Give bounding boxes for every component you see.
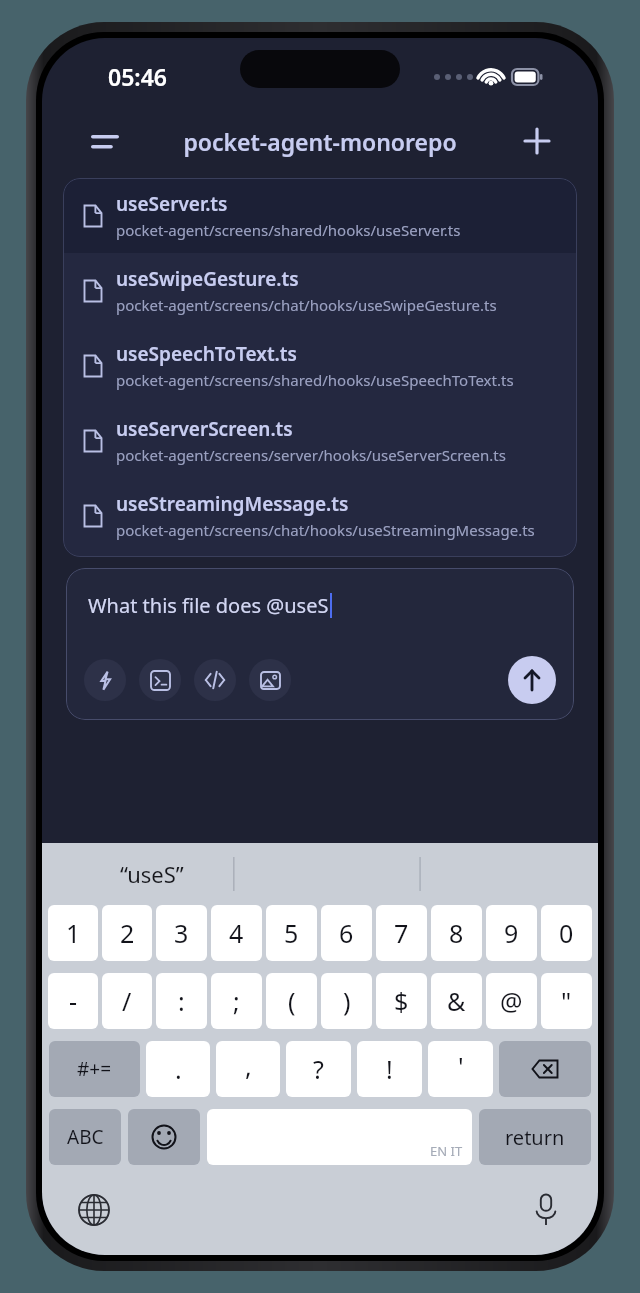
staticText: ABC xyxy=(67,1124,104,1150)
button[interactable]: Code xyxy=(194,659,236,701)
staticText: - xyxy=(69,984,78,1018)
button[interactable]: #+= xyxy=(49,1041,140,1097)
staticText: . xyxy=(175,1052,182,1086)
staticText: pocket-agent-monorepo xyxy=(183,126,457,157)
staticText: 9 xyxy=(504,916,519,950)
staticText: What this file does @useS xyxy=(88,592,329,619)
button[interactable]: : xyxy=(156,973,207,1029)
button[interactable]: 7 xyxy=(376,905,427,961)
button[interactable]: ? xyxy=(286,1041,351,1097)
staticText: useSwipeGesture.ts xyxy=(116,266,299,292)
button[interactable]: @ xyxy=(486,973,537,1029)
button[interactable]: $ xyxy=(376,973,427,1029)
button[interactable]: Space xyxy=(207,1109,472,1165)
button[interactable]: useSpeechToText.ts xyxy=(63,328,577,403)
staticText: 4 xyxy=(229,916,244,950)
button[interactable]: useServerScreen.ts xyxy=(63,403,577,478)
staticText: 8 xyxy=(449,916,464,950)
staticText: useServer.ts xyxy=(116,191,228,217)
staticText: , xyxy=(245,1049,252,1083)
button[interactable]: ABC xyxy=(49,1109,121,1165)
button[interactable]: useServer.ts xyxy=(63,178,577,253)
button[interactable]: Backspace xyxy=(499,1041,591,1097)
button[interactable]: Send xyxy=(508,656,556,704)
staticText: useSpeechToText.ts xyxy=(116,341,297,367)
staticText: $ xyxy=(394,984,409,1018)
button[interactable]: ( xyxy=(266,973,317,1029)
staticText: pocket-agent/screens/chat/hooks/useStrea… xyxy=(116,520,535,540)
button[interactable]: 4 xyxy=(211,905,262,961)
staticText: useServerScreen.ts xyxy=(116,416,293,442)
staticText: : xyxy=(178,984,185,1018)
button[interactable]: 5 xyxy=(266,905,317,961)
button[interactable]: 3 xyxy=(156,905,207,961)
staticText: pocket-agent/screens/server/hooks/useSer… xyxy=(116,445,506,465)
staticText: 7 xyxy=(394,916,409,950)
staticText: return xyxy=(505,1124,565,1151)
staticText: ' xyxy=(458,1049,464,1083)
button[interactable]: 2 xyxy=(102,905,152,961)
staticText: 05:46 xyxy=(108,61,167,92)
button[interactable]: Attach image xyxy=(249,659,291,701)
staticText: " xyxy=(561,984,572,1018)
button[interactable]: New xyxy=(514,118,560,164)
button[interactable]: ' xyxy=(428,1041,493,1097)
button[interactable]: ) xyxy=(321,973,372,1029)
button[interactable]: , xyxy=(216,1041,280,1097)
button[interactable]: ! xyxy=(357,1041,422,1097)
button[interactable]: & xyxy=(431,973,482,1029)
button[interactable]: Change language xyxy=(68,1184,120,1236)
button[interactable]: ; xyxy=(211,973,262,1029)
staticText: ) xyxy=(343,984,351,1018)
staticText: ! xyxy=(386,1052,393,1086)
staticText: ( xyxy=(288,984,296,1018)
button[interactable]: Quick actions xyxy=(84,659,126,701)
staticText: 5 xyxy=(284,916,299,950)
button[interactable]: 6 xyxy=(321,905,372,961)
button[interactable]: useStreamingMessage.ts xyxy=(63,478,577,553)
button[interactable]: 0 xyxy=(541,905,592,961)
staticText: 2 xyxy=(120,916,135,950)
staticText: 0 xyxy=(559,916,574,950)
button[interactable]: - xyxy=(48,973,98,1029)
staticText: 1 xyxy=(66,916,81,950)
button[interactable]: . xyxy=(146,1041,210,1097)
staticText: “useS” xyxy=(120,859,184,889)
staticText: useSe xyxy=(130,555,182,557)
staticText: pocket-agent/screens/chat/hooks/useSwipe… xyxy=(116,295,497,315)
button[interactable]: Menu xyxy=(82,118,128,164)
staticText: ; xyxy=(233,984,240,1018)
staticText: / xyxy=(122,984,132,1018)
button[interactable]: 9 xyxy=(486,905,537,961)
staticText: @ xyxy=(500,984,523,1018)
button[interactable]: Terminal xyxy=(139,659,181,701)
staticText: ? xyxy=(313,1052,324,1086)
button[interactable]: 1 xyxy=(48,905,98,961)
button[interactable]: useSwipeGesture.ts xyxy=(63,253,577,328)
button[interactable]: 8 xyxy=(431,905,482,961)
button[interactable]: " xyxy=(541,973,592,1029)
button[interactable]: return xyxy=(479,1109,591,1165)
staticText: EN IT xyxy=(430,1142,463,1160)
button[interactable]: Emoji xyxy=(128,1109,200,1165)
staticText: 6 xyxy=(339,916,354,950)
staticText: pocket-agent/screens/shared/hooks/useSer… xyxy=(116,220,461,240)
button[interactable]: Dictate xyxy=(520,1184,572,1236)
staticText: & xyxy=(447,984,466,1018)
staticText: pocket-agent/screens/shared/hooks/useSpe… xyxy=(116,370,514,390)
staticText: #+= xyxy=(77,1056,112,1082)
staticText: useStreamingMessage.ts xyxy=(116,491,349,517)
staticText: 3 xyxy=(174,916,189,950)
button[interactable]: / xyxy=(102,973,152,1029)
